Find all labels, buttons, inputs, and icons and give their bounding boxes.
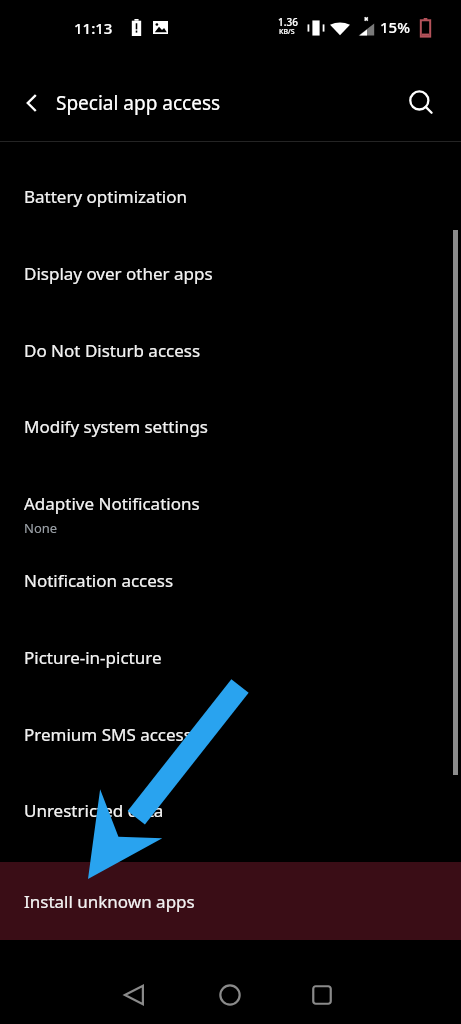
staticText: Picture-in-picture <box>24 646 162 669</box>
button[interactable]: Display over other apps <box>0 262 461 312</box>
staticText: None <box>24 519 58 537</box>
staticText: Special app access <box>56 90 221 116</box>
staticText: Battery optimization <box>24 185 187 208</box>
button[interactable]: Premium SMS access <box>0 723 461 773</box>
button[interactable]: Picture-in-picture <box>0 646 461 696</box>
button[interactable]: Do Not Disturb access <box>0 339 461 389</box>
button[interactable]: Battery optimization <box>0 185 461 235</box>
staticText: Install unknown apps <box>24 890 195 913</box>
staticText: 1.36 <box>278 15 298 29</box>
staticText: 15% <box>380 17 410 37</box>
staticText: Notification access <box>24 569 174 592</box>
button[interactable]: Back <box>112 972 158 1018</box>
button[interactable]: Unrestricted data <box>0 799 461 849</box>
button[interactable]: Home <box>207 972 253 1018</box>
button[interactable]: Back <box>10 82 52 124</box>
button[interactable]: Adaptive Notifications <box>0 492 461 554</box>
button[interactable]: Install unknown apps <box>0 862 461 940</box>
staticText: Unrestricted data <box>24 799 164 822</box>
button[interactable]: Notification access <box>0 569 461 619</box>
staticText: Modify system settings <box>24 415 208 438</box>
staticText: Adaptive Notifications <box>24 492 200 515</box>
staticText: KB/S <box>279 27 295 37</box>
staticText: 11:13 <box>74 18 113 38</box>
staticText: Do Not Disturb access <box>24 339 201 362</box>
button[interactable]: Recent apps <box>299 972 345 1018</box>
button[interactable]: Search <box>400 82 442 124</box>
staticText: Display over other apps <box>24 262 213 285</box>
staticText: Premium SMS access <box>24 723 192 746</box>
button[interactable]: Modify system settings <box>0 415 461 465</box>
